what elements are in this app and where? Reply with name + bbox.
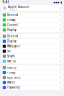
button[interactable]: Face ID bbox=[2, 59, 62, 64]
button[interactable]: Passwords bbox=[2, 85, 62, 90]
staticText: Battery bbox=[7, 66, 16, 69]
staticText: 9:41 bbox=[3, 0, 10, 4]
staticText: Siri bbox=[7, 49, 11, 53]
staticText: General bbox=[7, 13, 18, 17]
button[interactable]: Siri bbox=[2, 49, 62, 54]
staticText: Display bbox=[7, 28, 16, 32]
staticText: Face ID bbox=[7, 59, 16, 63]
button[interactable]: Privacy bbox=[2, 18, 62, 23]
button[interactable]: App Store bbox=[2, 75, 62, 80]
staticText: Wallpaper bbox=[7, 44, 20, 48]
staticText: Search bbox=[7, 54, 15, 58]
staticText: Display bbox=[7, 39, 16, 43]
staticText: Apple Account bbox=[8, 5, 29, 9]
staticText: App Store bbox=[7, 76, 21, 79]
button[interactable]: Display bbox=[2, 39, 62, 44]
staticText: General bbox=[7, 34, 18, 38]
staticText: Privacy bbox=[7, 18, 15, 22]
button[interactable]: Battery bbox=[2, 65, 62, 70]
button[interactable]: Apple Account bbox=[2, 5, 62, 11]
button[interactable]: Wallet bbox=[2, 80, 62, 85]
button[interactable]: Privacy bbox=[2, 70, 62, 75]
button[interactable]: Search bbox=[2, 54, 62, 59]
staticText: Privacy bbox=[7, 71, 15, 74]
staticText: Passwords bbox=[7, 86, 20, 89]
button[interactable]: General bbox=[2, 34, 62, 39]
button[interactable]: General bbox=[2, 13, 62, 18]
staticText: Control bbox=[7, 23, 18, 27]
button[interactable]: Control bbox=[2, 23, 62, 28]
staticText: Wallet bbox=[7, 81, 15, 84]
button[interactable]: Wallpaper bbox=[2, 44, 62, 49]
staticText: Apple ID, iCloud bbox=[8, 9, 17, 11]
button[interactable]: Display bbox=[2, 28, 62, 32]
staticText: ▪▪▪ ▮ bbox=[53, 1, 61, 4]
